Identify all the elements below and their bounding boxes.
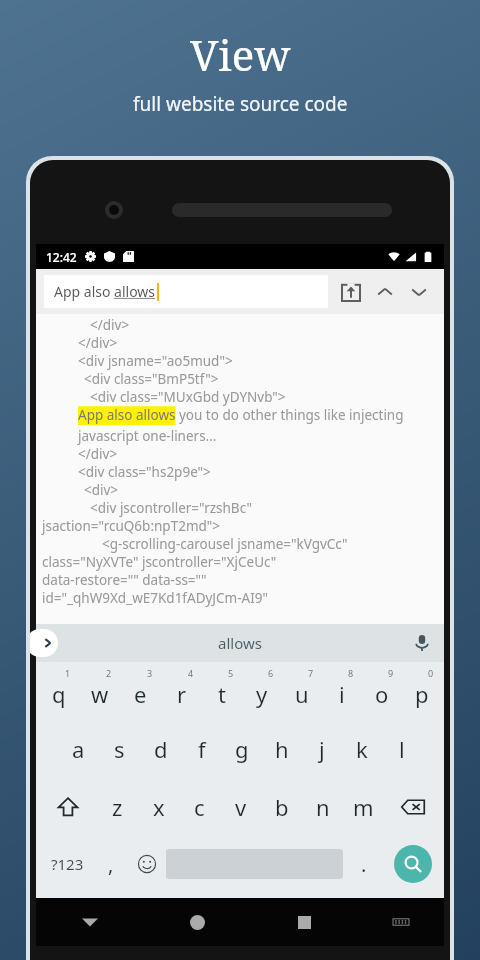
staticText: <div jsname="ao5mud"> [78, 352, 233, 370]
staticText: </div> [90, 316, 130, 334]
staticText: id="_qhW9Xd_wE7Kd1fADyJCm-AI9" [42, 589, 268, 607]
button[interactable]: l [382, 720, 422, 778]
staticText: </div> [78, 334, 118, 352]
button[interactable]: s [99, 720, 140, 778]
staticText: z [112, 792, 123, 822]
staticText: k [356, 734, 368, 764]
staticText: g [235, 734, 249, 764]
button[interactable]: g [222, 720, 262, 778]
staticText: full website source code [133, 91, 348, 117]
staticText: n [316, 792, 330, 822]
staticText: 8 [348, 667, 354, 679]
button[interactable]: 9 [362, 662, 402, 720]
staticText: x [153, 792, 165, 822]
staticText: 1 [65, 667, 71, 679]
button[interactable]: Expand suggestions [30, 629, 58, 657]
staticText: 9 [388, 667, 394, 679]
button[interactable]: Backspace [384, 778, 442, 836]
staticText: data-restore="" data-ss="" [42, 571, 207, 589]
staticText: View [190, 26, 291, 83]
button[interactable]: 5 [202, 662, 242, 720]
staticText: s [114, 734, 125, 764]
staticText: b [275, 792, 289, 822]
staticText: y [256, 679, 268, 709]
staticText: q [52, 679, 66, 709]
staticText: p [415, 679, 429, 709]
staticText: 3 [147, 667, 153, 679]
button[interactable]: f [181, 720, 222, 778]
button[interactable]: d [140, 720, 181, 778]
button[interactable]: m [343, 778, 384, 836]
button[interactable]: allows [218, 633, 262, 653]
button[interactable]: Voice input [410, 631, 434, 655]
staticText: allows [218, 633, 262, 653]
staticText: e [134, 679, 147, 709]
button[interactable]: Shift [38, 778, 97, 836]
button[interactable]: Back [36, 898, 144, 946]
button[interactable]: c [179, 778, 220, 836]
staticText: m [353, 792, 374, 822]
button[interactable]: h [262, 720, 302, 778]
staticText: c [194, 792, 205, 822]
staticText: f [198, 734, 206, 764]
staticText: t [218, 679, 226, 709]
button[interactable]: k [342, 720, 382, 778]
staticText: ?123 [51, 854, 84, 874]
button[interactable]: </div> [36, 314, 444, 624]
button[interactable]: Emoji [128, 836, 166, 892]
staticText: 5 [228, 667, 234, 679]
button[interactable]: 2 [79, 662, 120, 720]
staticText: </div> [78, 445, 118, 463]
button[interactable]: Search [385, 836, 440, 892]
staticText: a [72, 734, 85, 764]
staticText: o [375, 679, 389, 709]
button[interactable]: 4 [161, 662, 202, 720]
button[interactable]: 3 [120, 662, 161, 720]
staticText: 4 [188, 667, 194, 679]
staticText: <div class="BmP5tf"> [84, 370, 219, 388]
button[interactable]: 6 [242, 662, 282, 720]
staticText: <div class="MUxGbd yDYNvb"> [90, 388, 286, 406]
button[interactable]: Open in browser [334, 275, 368, 309]
staticText: v [235, 792, 247, 822]
staticText: 7 [308, 667, 314, 679]
button[interactable]: v [220, 778, 261, 836]
staticText: jsaction="rcuQ6b:npT2md"> [42, 517, 221, 535]
staticText: <div class="hs2p9e"> [78, 463, 211, 481]
staticText: <div> [84, 481, 119, 499]
staticText: 12:42 [46, 249, 77, 265]
button[interactable]: 7 [282, 662, 322, 720]
staticText: l [399, 734, 405, 764]
button[interactable]: a [58, 720, 99, 778]
button[interactable]: ?123 [40, 836, 94, 892]
staticText: 6 [268, 667, 274, 679]
staticText: r [177, 679, 187, 709]
staticText: h [275, 734, 289, 764]
button[interactable]: App also allows [44, 275, 328, 308]
button[interactable]: n [302, 778, 343, 836]
staticText: w [91, 679, 109, 709]
button[interactable]: x [138, 778, 179, 836]
staticText: 2 [106, 667, 112, 679]
staticText: . [361, 851, 367, 878]
button[interactable]: . [343, 836, 385, 892]
button[interactable]: Home [144, 898, 251, 946]
staticText: App also allows you to do other things l… [78, 406, 444, 445]
button[interactable]: j [302, 720, 342, 778]
button[interactable]: Next match [402, 275, 436, 309]
staticText: i [339, 679, 345, 709]
button[interactable]: 0 [402, 662, 442, 720]
staticText: <g-scrolling-carousel jsname="kVgvCc" [102, 535, 348, 553]
button[interactable]: Previous match [368, 275, 402, 309]
button[interactable]: b [261, 778, 302, 836]
button[interactable]: , [94, 836, 128, 892]
staticText: j [319, 734, 325, 764]
staticText: 0 [428, 667, 434, 679]
button[interactable]: Recent apps [251, 898, 358, 946]
button[interactable]: 8 [322, 662, 362, 720]
button[interactable]: z [97, 778, 138, 836]
button[interactable]: Switch keyboard [358, 898, 444, 946]
button[interactable]: 1 [38, 662, 79, 720]
staticText: d [154, 734, 168, 764]
